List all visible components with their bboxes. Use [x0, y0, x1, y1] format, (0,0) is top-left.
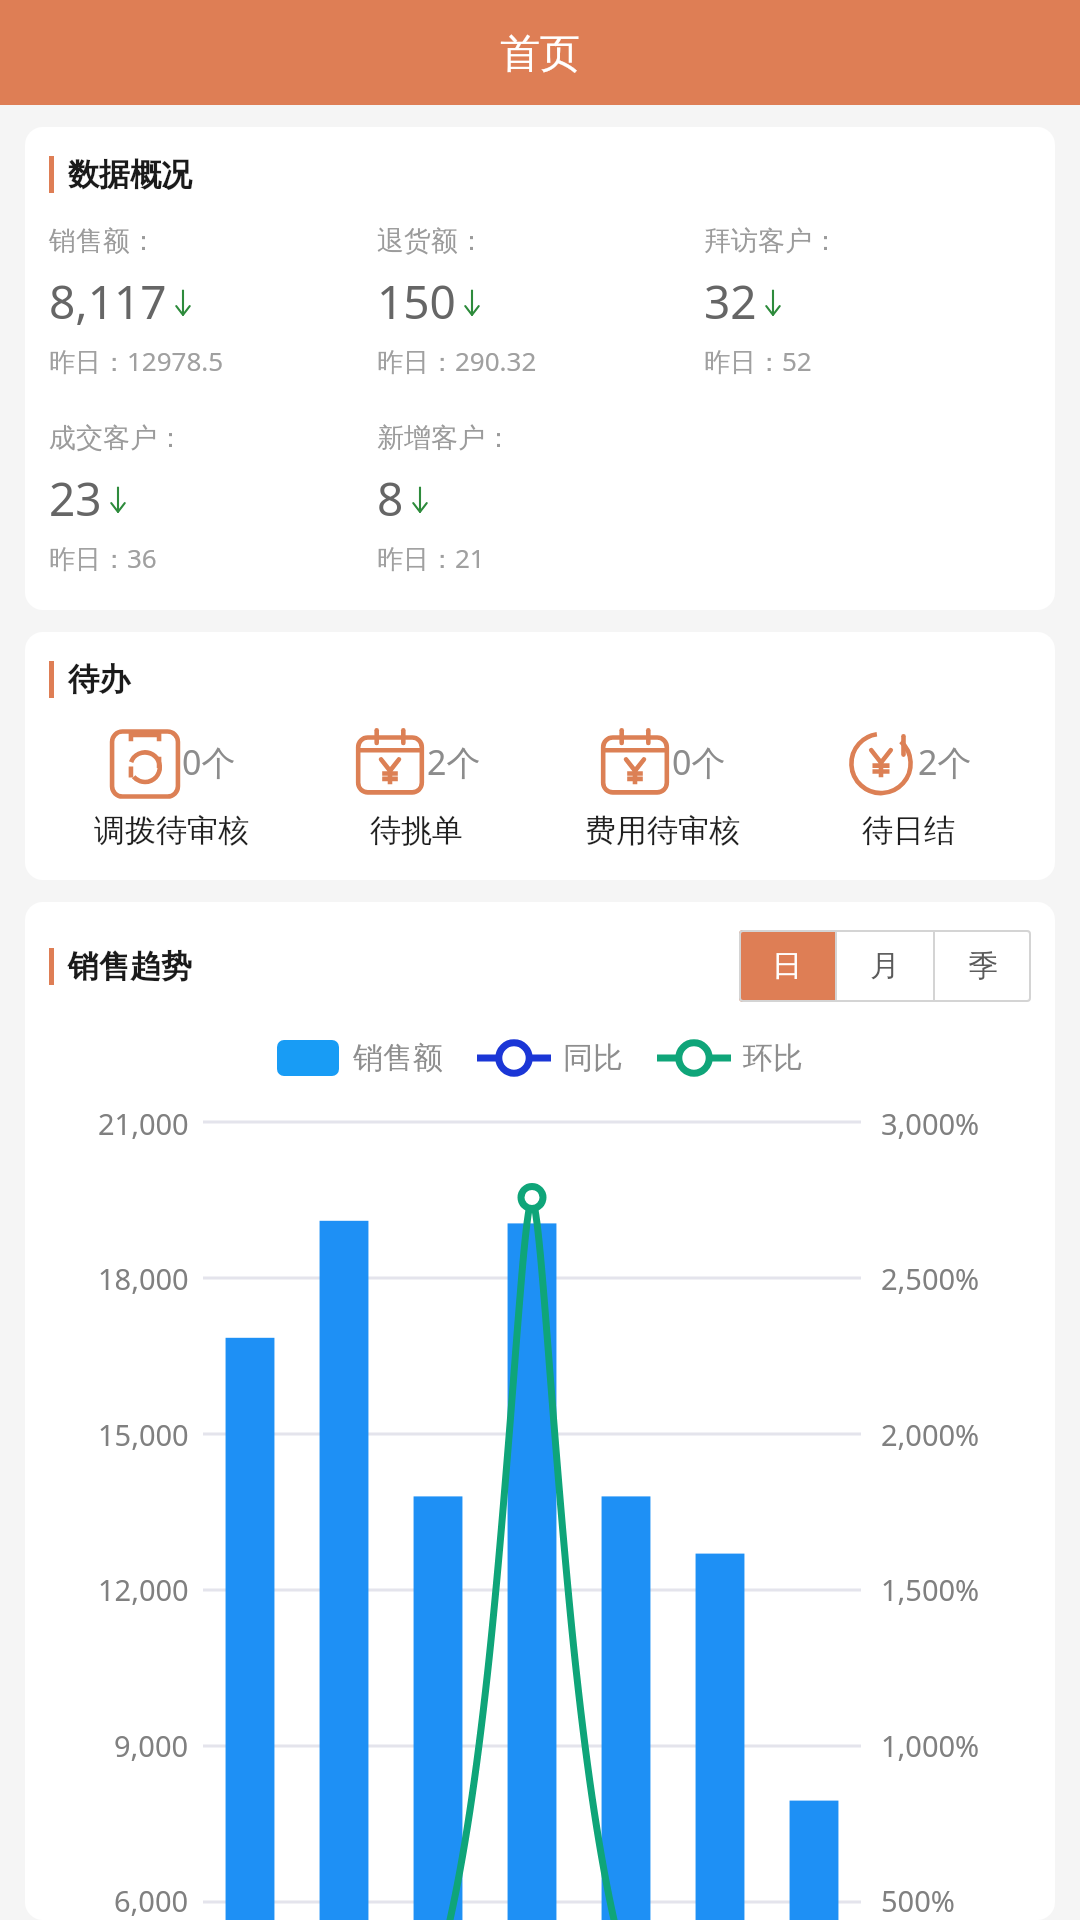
staticText: 昨日：290.32 [377, 343, 537, 379]
staticText: 12,000 [98, 1570, 189, 1609]
button[interactable]: 0个 [539, 725, 785, 850]
staticText: 0个 [182, 739, 236, 785]
staticText: 9,000 [114, 1726, 189, 1765]
staticText: 同比 [563, 1039, 623, 1077]
button[interactable]: 日 [739, 930, 835, 1002]
button[interactable]: 2个 [294, 725, 539, 850]
staticText: 销售额： [49, 224, 157, 258]
staticText: 昨日：12978.5 [49, 343, 224, 379]
staticText: 待办 [68, 660, 130, 699]
button[interactable]: 2个 [785, 725, 1031, 850]
staticText: 1,000% [881, 1726, 980, 1765]
staticText: 2,500% [881, 1259, 980, 1298]
staticText: 8,117 [49, 270, 167, 333]
staticText: 日 [772, 947, 802, 985]
staticText: 150 [377, 270, 456, 333]
staticText: 昨日：36 [49, 540, 157, 576]
staticText: 首页 [500, 28, 580, 78]
staticText: 21,000 [98, 1104, 189, 1143]
staticText: 拜访客户： [704, 224, 839, 258]
staticText: 环比 [743, 1039, 803, 1077]
staticText: 季 [968, 947, 998, 985]
staticText: 新增客户： [377, 421, 512, 455]
staticText: 昨日：21 [377, 540, 485, 576]
staticText: 调拨待审核 [94, 811, 249, 850]
button[interactable]: 季 [935, 930, 1031, 1002]
staticText: 23 [49, 467, 102, 530]
staticText: 8 [377, 467, 404, 530]
staticText: 32 [704, 270, 757, 333]
staticText: 待挑单 [370, 811, 463, 850]
staticText: 0个 [672, 739, 726, 785]
staticText: 退货额： [377, 224, 485, 258]
staticText: 待日结 [862, 811, 955, 850]
staticText: 2,000% [881, 1415, 980, 1454]
staticText: 6,000 [114, 1881, 189, 1920]
staticText: 销售额 [353, 1039, 443, 1077]
button[interactable]: 0个 [49, 725, 294, 850]
staticText: 500% [881, 1881, 955, 1920]
button[interactable]: 月 [837, 930, 933, 1002]
staticText: 3,000% [881, 1104, 980, 1143]
staticText: 昨日：52 [704, 343, 812, 379]
staticText: 15,000 [98, 1415, 189, 1454]
staticText: 18,000 [98, 1259, 189, 1298]
staticText: 数据概况 [68, 155, 192, 194]
staticText: 2个 [427, 739, 481, 785]
staticText: 月 [870, 947, 900, 985]
staticText: 成交客户： [49, 421, 184, 455]
staticText: 1,500% [881, 1570, 980, 1609]
staticText: 2个 [918, 739, 972, 785]
staticText: 费用待审核 [585, 811, 740, 850]
staticText: 销售趋势 [68, 947, 192, 986]
